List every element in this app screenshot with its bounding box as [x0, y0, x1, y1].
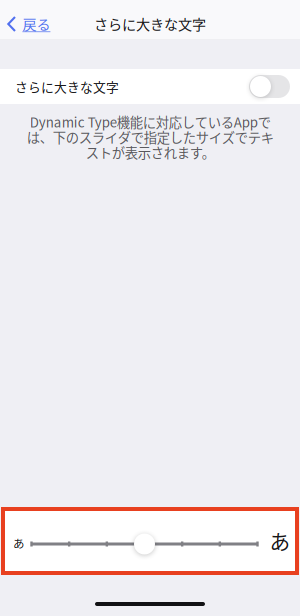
staticText: あ: [13, 535, 24, 551]
staticText: 戻る: [22, 13, 50, 34]
button[interactable]: 戻る: [0, 0, 60, 40]
staticText: あ: [269, 526, 290, 556]
button[interactable]: さらに大きな文字: [0, 69, 300, 104]
staticText: さらに大きな文字: [94, 13, 206, 34]
staticText: Dynamic Type機能に対応しているAppでは、下のスライダで指定したサイ…: [26, 112, 273, 162]
staticText: さらに大きな文字: [15, 77, 119, 96]
